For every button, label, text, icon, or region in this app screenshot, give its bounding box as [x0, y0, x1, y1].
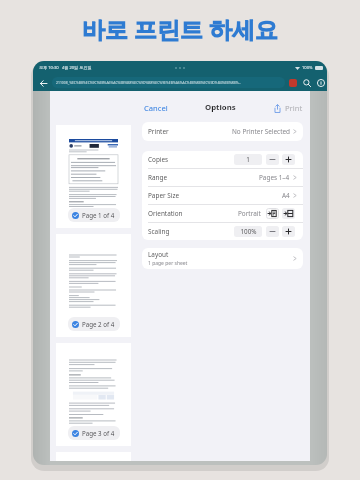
staticText: Print [285, 103, 303, 113]
button[interactable]: Layout [142, 248, 303, 269]
staticText: Scaling [148, 227, 170, 236]
staticText: 100% [302, 65, 313, 71]
button[interactable]: Printer [142, 122, 303, 141]
staticText: Portrait [238, 209, 261, 218]
staticText: Page 3 of 4 [82, 429, 115, 437]
staticText: Cancel [144, 103, 168, 113]
button[interactable]: Page 3 of 4 [68, 426, 120, 440]
staticText: Orientation [148, 209, 183, 218]
staticText: Layout [148, 250, 169, 259]
staticText: Paper Size [148, 191, 180, 200]
button[interactable]: Decrease Scaling [266, 226, 279, 237]
staticText: A4 [282, 191, 290, 200]
button[interactable]: Page 2 of 4 [56, 234, 131, 337]
button[interactable]: Info [315, 77, 326, 88]
staticText: Options [205, 102, 236, 113]
button[interactable]: 1 [234, 154, 262, 165]
staticText: 1 page per sheet [148, 260, 188, 267]
staticText: Page 1 of 4 [82, 211, 115, 219]
button[interactable]: Page 3 of 4 [56, 343, 131, 446]
button[interactable]: Increase Copies [282, 154, 295, 165]
staticText: Page 2 of 4 [82, 320, 115, 328]
staticText: 100% [240, 227, 257, 236]
button[interactable]: Extension [289, 79, 297, 87]
button[interactable]: Landscape [282, 208, 295, 219]
button[interactable]: Page 1 of 4 [68, 208, 120, 222]
button[interactable]: Decrease Copies [266, 154, 279, 165]
button[interactable]: Paper Size [142, 187, 303, 204]
staticText: 1 [246, 155, 250, 164]
staticText: Pages 1–4 [259, 173, 290, 182]
button[interactable]: Print [271, 101, 305, 115]
staticText: Copies [148, 155, 169, 164]
button[interactable]: Increase Scaling [282, 226, 295, 237]
button[interactable]: Cancel [142, 100, 170, 116]
button[interactable]: Page 2 of 4 [68, 317, 120, 331]
staticText: 오후 10:30 4월 20일 토요일 [39, 65, 92, 71]
staticText: Printer [148, 127, 169, 136]
button[interactable]: 100% [234, 226, 262, 237]
button[interactable]: Page 1 of 4 [56, 125, 131, 228]
staticText: 211008_%EC%B8%EC%9C%EB%A6%AC%EB%B8%EC%9D… [56, 80, 242, 85]
button[interactable]: Range [142, 169, 303, 186]
button[interactable]: 211008_%EC%B8%EC%9C%EB%A6%AC%EB%B8%EC%9D… [52, 77, 285, 88]
button[interactable]: Search [301, 77, 312, 88]
staticText: No Printer Selected [232, 127, 290, 136]
staticText: 바로 프린트 하세요 [82, 13, 278, 44]
button[interactable]: Back [37, 77, 49, 89]
button[interactable]: Portrait [266, 208, 279, 219]
staticText: Range [148, 173, 168, 182]
